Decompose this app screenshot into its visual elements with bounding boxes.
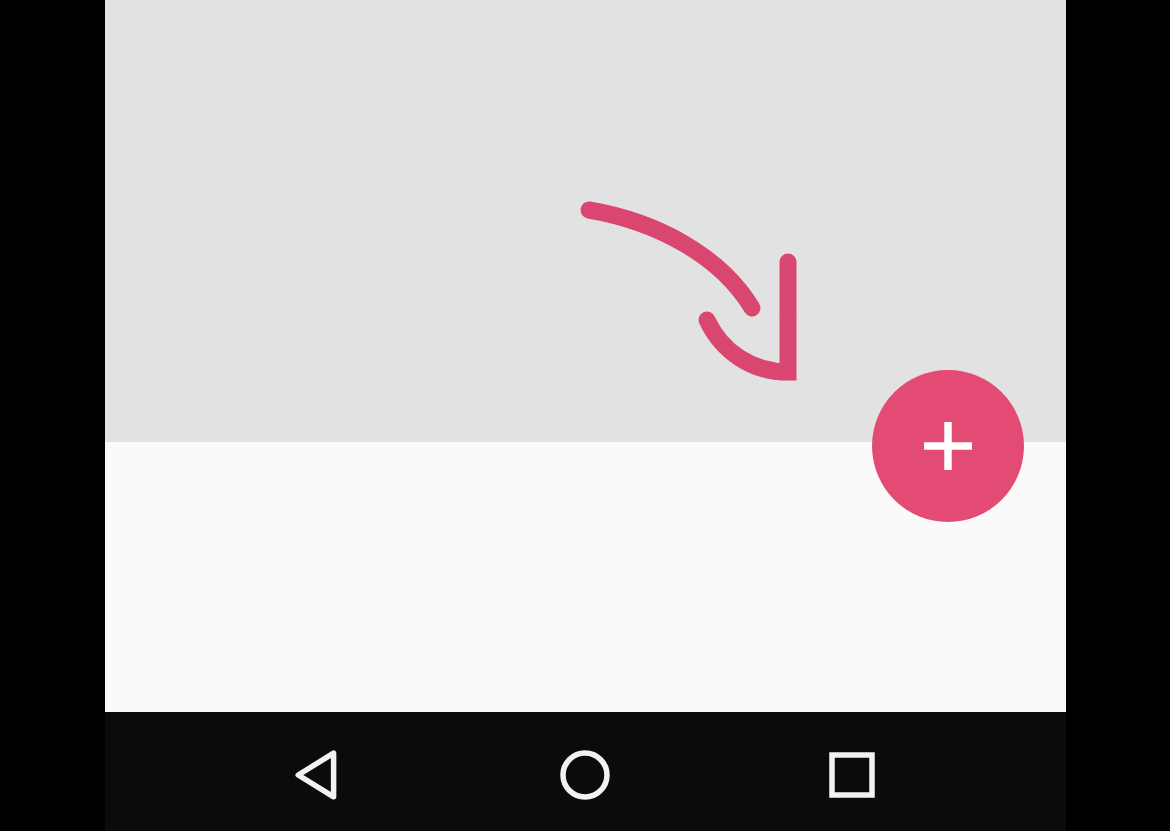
button[interactable]: Recents (804, 727, 900, 823)
button[interactable]: Add (872, 370, 1024, 522)
button[interactable]: Back (270, 727, 366, 823)
button[interactable]: Home (537, 727, 633, 823)
